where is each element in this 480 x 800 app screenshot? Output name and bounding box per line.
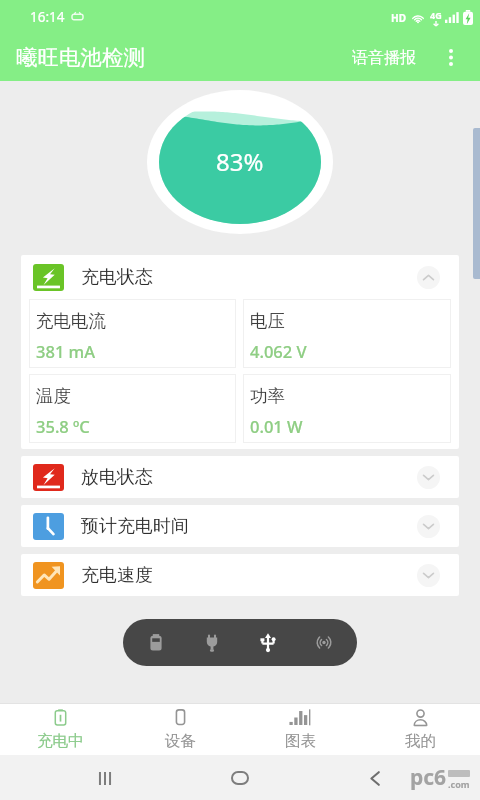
button[interactable]: 我的 — [360, 704, 480, 755]
button[interactable]: 设备 — [120, 704, 240, 755]
button[interactable]: Expand — [417, 564, 440, 587]
staticText: 充电状态 — [81, 266, 153, 289]
staticText: 设备 — [165, 731, 196, 751]
button[interactable]: Home — [220, 758, 260, 798]
staticText: 放电状态 — [81, 466, 153, 489]
staticText: 35.8 ºC — [36, 415, 90, 437]
button[interactable]: 充电电流 — [29, 299, 236, 368]
staticText: 0.01 W — [250, 415, 303, 437]
staticText: 充电速度 — [81, 564, 153, 587]
staticText: 图表 — [285, 731, 316, 751]
button[interactable]: Recents — [85, 758, 125, 798]
button[interactable]: 温度 — [29, 374, 236, 443]
button[interactable]: 功率 — [243, 374, 451, 443]
staticText: 电压 — [250, 310, 285, 332]
staticText: 381 mA — [36, 340, 96, 362]
button[interactable]: 预计充电时间 — [21, 505, 459, 547]
button[interactable]: Expand — [417, 466, 440, 489]
button[interactable]: Collapse — [417, 266, 440, 289]
button[interactable]: Expand — [417, 515, 440, 538]
staticText: 4G — [430, 9, 442, 21]
button[interactable]: More options — [428, 34, 474, 81]
staticText: 预计充电时间 — [81, 515, 189, 538]
staticText: 我的 — [405, 731, 436, 751]
staticText: HD — [391, 11, 406, 25]
staticText: 充电中 — [37, 731, 84, 751]
staticText: 温度 — [36, 385, 71, 407]
button[interactable]: Power adapter — [189, 619, 235, 666]
button[interactable]: Wireless charging — [301, 619, 347, 666]
staticText: 功率 — [250, 385, 285, 407]
button[interactable]: 语音播报 — [344, 36, 428, 80]
button[interactable]: Back — [355, 758, 395, 798]
button[interactable]: 图表 — [240, 704, 360, 755]
staticText: 4.062 V — [250, 340, 307, 362]
button[interactable]: Battery — [133, 619, 179, 666]
staticText: pc6 — [410, 763, 447, 792]
staticText: 曦旺电池检测 — [16, 44, 145, 71]
button[interactable]: USB — [245, 619, 291, 666]
staticText: 充电电流 — [36, 310, 106, 332]
button[interactable]: 充电状态 — [21, 255, 459, 299]
staticText: 16:14 — [30, 8, 65, 26]
staticText: .com — [448, 778, 470, 790]
staticText: 83% — [216, 145, 264, 178]
button[interactable]: 电压 — [243, 299, 451, 368]
button[interactable]: 充电中 — [0, 704, 120, 755]
button[interactable]: 放电状态 — [21, 456, 459, 498]
staticText: 语音播报 — [352, 48, 416, 68]
button[interactable]: 充电速度 — [21, 554, 459, 596]
